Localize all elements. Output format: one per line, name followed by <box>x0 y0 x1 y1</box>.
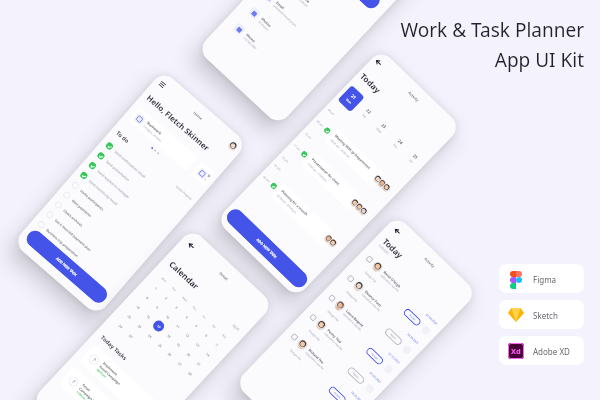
button[interactable]: Accept <box>402 307 422 327</box>
button[interactable]: Rasul O'leigh <box>354 251 443 338</box>
button[interactable]: 24 <box>383 129 412 158</box>
button[interactable]: 23 <box>367 114 396 142</box>
button[interactable]: Business trip preparation <box>34 217 119 293</box>
staticText: 21 <box>349 93 357 101</box>
button[interactable]: 11 <box>170 318 185 334</box>
button[interactable]: Eleanor Font <box>335 271 424 358</box>
button[interactable]: 1 <box>148 280 164 296</box>
button[interactable]: 9 <box>149 299 165 315</box>
staticText: Wed <box>181 295 188 302</box>
button[interactable]: Figma <box>499 264 584 293</box>
button[interactable]: Teamwork <box>127 106 198 171</box>
button[interactable]: 29 <box>113 318 128 334</box>
button[interactable]: Working Time <box>273 0 354 47</box>
button[interactable]: 6 <box>199 327 214 343</box>
button[interactable]: 5 <box>188 318 204 333</box>
button[interactable]: 25 <box>152 337 168 353</box>
staticText: 13 <box>195 342 200 348</box>
button[interactable]: Design <box>190 161 215 186</box>
button[interactable]: 7 <box>209 337 224 352</box>
button[interactable]: ADD NEW TASK <box>23 227 111 306</box>
button[interactable]: Reject <box>346 366 366 385</box>
staticText: Sat <box>211 323 217 330</box>
button[interactable]: Meeting With gr Department <box>324 128 385 187</box>
button[interactable]: Back <box>373 57 383 67</box>
button[interactable]: 28 <box>182 365 198 381</box>
button[interactable]: 4 <box>179 309 194 324</box>
button[interactable]: 27 <box>172 356 187 371</box>
button[interactable]: 16 <box>141 309 156 324</box>
button[interactable]: Attachment <box>364 383 375 394</box>
button[interactable]: Presentation for client <box>301 151 362 211</box>
button[interactable]: 18 <box>161 328 177 343</box>
button[interactable]: Photos <box>243 1 324 79</box>
staticText: Rasul O'leigh <box>382 270 402 289</box>
button[interactable]: 22 <box>352 99 380 127</box>
button[interactable]: 25 <box>399 145 427 173</box>
button[interactable]: 24 <box>142 328 157 343</box>
button[interactable]: 20 <box>181 346 196 362</box>
button[interactable]: ADD NEW TASK <box>223 206 311 291</box>
button[interactable]: 21 <box>191 356 207 371</box>
button[interactable]: Send invoices by email <box>77 168 162 244</box>
button[interactable]: 13 <box>190 337 205 352</box>
staticText: Accept <box>370 352 380 361</box>
button[interactable]: Penny Teal <box>298 310 386 397</box>
button[interactable]: Planning for a month <box>270 183 335 247</box>
button[interactable]: 21 <box>337 85 365 112</box>
button[interactable]: Send presentation <box>94 149 179 225</box>
staticText: Sun <box>221 333 228 339</box>
button[interactable]: 10 <box>160 309 175 324</box>
button[interactable]: Activity <box>423 256 436 269</box>
button[interactable]: 19 <box>171 337 186 352</box>
button[interactable]: 30 <box>123 328 138 343</box>
button[interactable]: Send request to manager <box>85 158 170 235</box>
staticText: 18.10.2021 <box>350 390 363 400</box>
staticText: App UI Kit <box>364 47 584 73</box>
button[interactable]: Send confirmation email <box>103 139 187 215</box>
button[interactable]: Laura Bagent <box>317 290 405 377</box>
button[interactable]: 15 <box>130 299 146 315</box>
button[interactable]: Invite participants <box>68 178 153 254</box>
button[interactable]: 26 <box>162 346 177 362</box>
button[interactable]: Sketch <box>499 300 584 329</box>
button[interactable]: Attachment <box>383 364 394 375</box>
staticText: Adobe XD <box>533 346 570 357</box>
button[interactable]: Rent payments <box>60 188 145 264</box>
button[interactable]: Back <box>186 241 196 251</box>
button[interactable]: 23 <box>132 318 147 334</box>
button[interactable]: Accept <box>327 385 347 400</box>
button[interactable]: Email <box>258 0 339 63</box>
button[interactable]: Back <box>392 226 402 236</box>
button[interactable]: 14 <box>200 346 215 362</box>
button[interactable]: Xd <box>499 336 584 365</box>
button[interactable]: Reject <box>383 327 403 346</box>
button[interactable]: Menu <box>158 81 166 88</box>
button[interactable]: Attachment <box>420 325 431 336</box>
button[interactable] <box>226 140 239 152</box>
button[interactable]: 8 <box>139 290 155 305</box>
button[interactable]: 3 <box>169 299 184 315</box>
button[interactable]: Detail <box>218 271 230 282</box>
button[interactable]: Activity <box>407 90 420 103</box>
button[interactable]: Attachment <box>401 344 413 355</box>
button[interactable]: 12 <box>179 327 195 343</box>
button[interactable]: SEND MESSAGE <box>306 0 383 12</box>
button[interactable]: 22 <box>121 309 137 324</box>
button[interactable]: Implement <box>78 344 165 400</box>
staticText: Thu <box>392 143 399 150</box>
button[interactable]: Get it from bill payment plan <box>43 207 128 284</box>
button[interactable]: 2 <box>158 290 174 305</box>
button[interactable]: 17 <box>151 318 166 334</box>
button[interactable]: Richard Tea <box>279 329 368 400</box>
button[interactable]: Check archives <box>51 198 136 274</box>
button[interactable]: Accept <box>365 346 385 366</box>
staticText: 01.04.2021 <box>425 313 438 326</box>
button[interactable]: Phone <box>228 18 309 95</box>
button[interactable]: Email <box>58 366 145 400</box>
